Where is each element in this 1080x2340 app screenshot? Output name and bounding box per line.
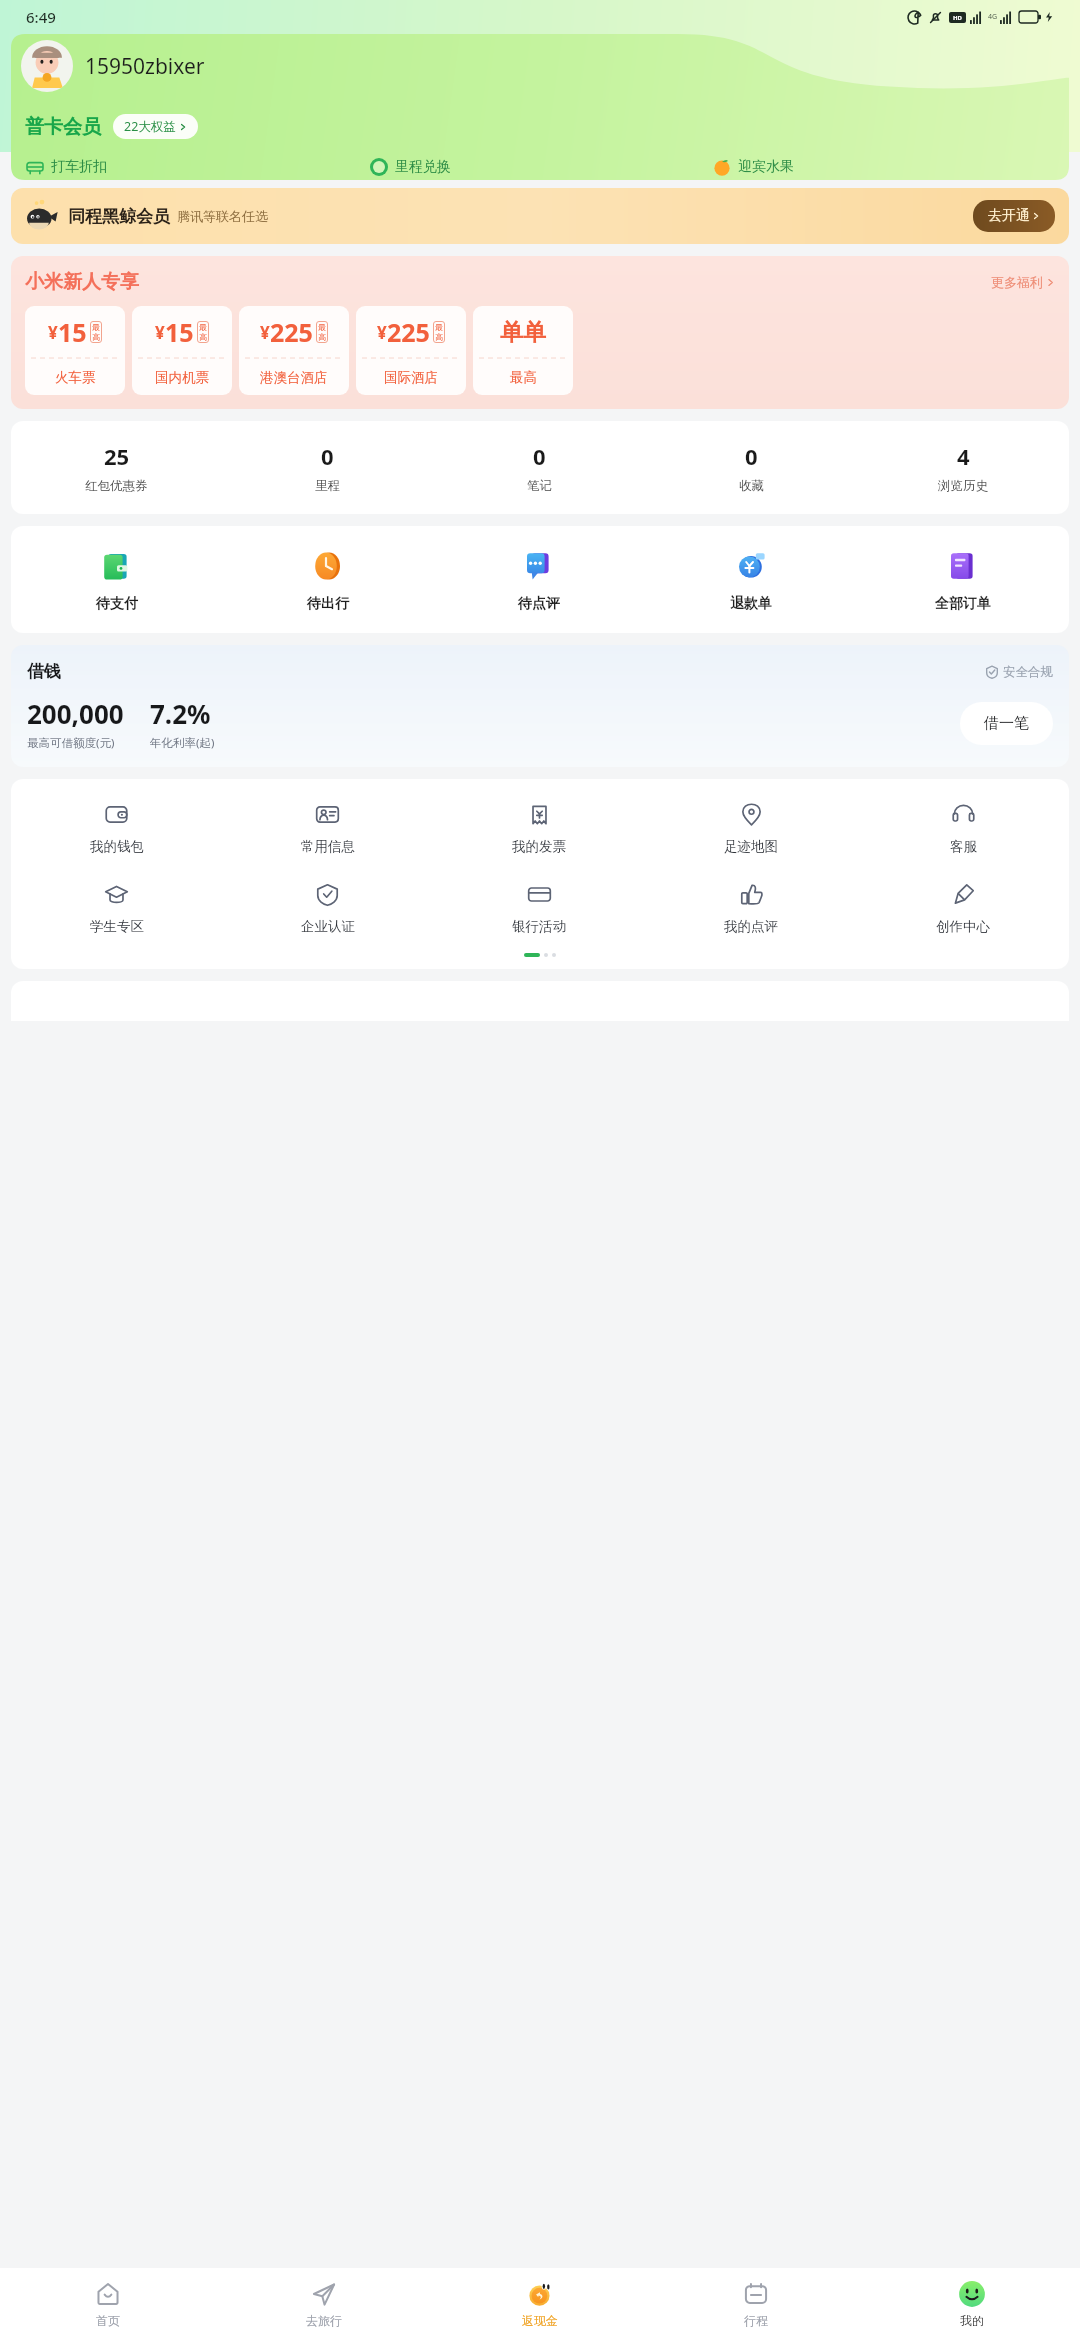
- staticText: 安全合规: [1003, 664, 1053, 680]
- staticText: 我的发票: [512, 838, 566, 855]
- button[interactable]: 0: [222, 441, 433, 494]
- staticText: 我的: [960, 2313, 984, 2328]
- button[interactable]: ¥: [239, 306, 349, 395]
- button[interactable]: 创作中心: [857, 881, 1069, 935]
- staticText: 最: [318, 322, 326, 332]
- button[interactable]: 返现金: [432, 2268, 648, 2340]
- button[interactable]: ¥: [356, 306, 466, 395]
- staticText: 普卡会员: [25, 115, 101, 139]
- staticText: 全部订单: [935, 595, 991, 613]
- staticText: 待点评: [518, 595, 560, 613]
- staticText: 退款单: [730, 595, 772, 613]
- staticText: 收藏: [739, 478, 764, 494]
- button[interactable]: 0: [645, 441, 857, 494]
- staticText: 0: [321, 441, 334, 471]
- staticText: 去旅行: [306, 2313, 342, 2328]
- staticText: 15: [58, 315, 87, 349]
- button[interactable]: 我的发票: [433, 801, 645, 855]
- staticText: 225: [270, 315, 313, 349]
- button[interactable]: 25: [11, 441, 222, 494]
- button[interactable]: 足迹地图: [645, 801, 857, 855]
- staticText: 最: [92, 322, 100, 332]
- button[interactable]: 待支付: [11, 546, 222, 613]
- button[interactable]: ¥: [25, 306, 125, 395]
- staticText: 银行活动: [512, 918, 566, 935]
- staticText: 同程黑鲸会员: [68, 206, 170, 227]
- staticText: ¥: [48, 321, 58, 344]
- button[interactable]: 小米新人专享: [25, 270, 1055, 294]
- staticText: 0: [533, 441, 546, 471]
- button[interactable]: 银行活动: [433, 881, 645, 935]
- staticText: 225: [387, 315, 430, 349]
- staticText: 4G: [988, 12, 998, 22]
- staticText: 最: [435, 322, 443, 332]
- button[interactable]: 退款单: [645, 546, 857, 613]
- staticText: 学生专区: [90, 918, 144, 935]
- staticText: 最高: [510, 369, 537, 386]
- staticText: 最高可借额度(元): [27, 735, 115, 751]
- staticText: 去开通: [988, 207, 1030, 225]
- button[interactable]: 待出行: [222, 546, 433, 613]
- button[interactable]: 去开通: [973, 200, 1055, 232]
- staticText: 待支付: [96, 595, 138, 613]
- button[interactable]: 22大权益: [113, 114, 198, 139]
- staticText: ¥: [377, 321, 387, 344]
- staticText: 更多福利: [991, 274, 1043, 290]
- staticText: 客服: [950, 838, 977, 855]
- button[interactable]: 借一笔: [960, 702, 1053, 745]
- staticText: 打车折扣: [51, 158, 107, 176]
- button[interactable]: 行程: [648, 2268, 864, 2340]
- button[interactable]: 待点评: [433, 546, 645, 613]
- staticText: ¥: [155, 321, 165, 344]
- staticText: 返现金: [522, 2313, 558, 2328]
- staticText: 港澳台酒店: [260, 369, 328, 386]
- staticText: 创作中心: [936, 918, 990, 935]
- button[interactable]: 单单: [473, 306, 573, 395]
- staticText: 足迹地图: [724, 838, 778, 855]
- staticText: 行程: [744, 2313, 768, 2328]
- button[interactable]: Avatar: [21, 40, 73, 92]
- button[interactable]: 去旅行: [216, 2268, 432, 2340]
- staticText: 火车票: [55, 369, 96, 386]
- staticText: 国内机票: [155, 369, 209, 386]
- staticText: 里程: [315, 478, 340, 494]
- staticText: 红包优惠券: [85, 478, 148, 494]
- button[interactable]: 借钱: [11, 645, 1069, 767]
- staticText: 借钱: [27, 661, 61, 682]
- staticText: 高: [199, 332, 207, 342]
- staticText: 15950zbixer: [85, 52, 205, 81]
- staticText: 高: [435, 332, 443, 342]
- button[interactable]: 客服: [857, 801, 1069, 855]
- staticText: ¥: [260, 321, 270, 344]
- button[interactable]: 打车折扣: [25, 157, 369, 177]
- staticText: 年化利率(起): [150, 735, 215, 751]
- staticText: 小米新人专享: [25, 270, 139, 294]
- button[interactable]: 全部订单: [857, 546, 1069, 613]
- staticText: 借一笔: [984, 714, 1029, 733]
- staticText: 里程兑换: [395, 158, 451, 176]
- button[interactable]: 企业认证: [222, 881, 433, 935]
- staticText: 企业认证: [301, 918, 355, 935]
- staticText: 高: [92, 332, 100, 342]
- button[interactable]: 里程兑换: [369, 157, 712, 177]
- staticText: 腾讯等联名任选: [177, 208, 268, 224]
- button[interactable]: 首页: [0, 2268, 216, 2340]
- staticText: 笔记: [527, 478, 552, 494]
- staticText: 7.2%: [150, 696, 211, 731]
- button[interactable]: 我的: [864, 2268, 1080, 2340]
- button[interactable]: 我的点评: [645, 881, 857, 935]
- staticText: 浏览历史: [938, 478, 988, 494]
- button[interactable]: 4: [857, 441, 1069, 494]
- staticText: 15: [165, 315, 194, 349]
- button[interactable]: 常用信息: [222, 801, 433, 855]
- button[interactable]: ¥: [132, 306, 232, 395]
- staticText: 常用信息: [301, 838, 355, 855]
- button[interactable]: 0: [433, 441, 645, 494]
- staticText: 25: [104, 441, 130, 471]
- button[interactable]: 同程黑鲸会员: [11, 188, 1069, 244]
- button[interactable]: 我的钱包: [11, 801, 222, 855]
- staticText: HD: [953, 14, 962, 22]
- staticText: 迎宾水果: [738, 158, 794, 176]
- button[interactable]: 学生专区: [11, 881, 222, 935]
- button[interactable]: 迎宾水果: [712, 157, 1055, 177]
